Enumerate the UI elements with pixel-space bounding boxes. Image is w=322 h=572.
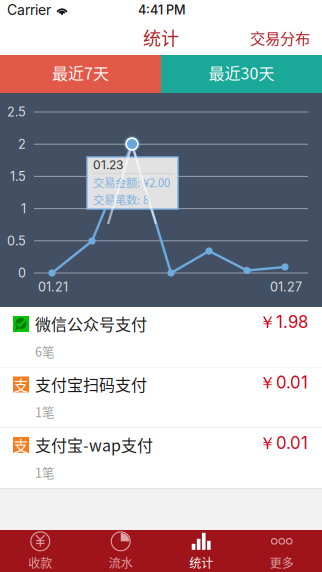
button[interactable]: 更多: [241, 530, 322, 572]
staticText: 收款: [28, 554, 52, 571]
staticText: 1笔: [35, 403, 55, 421]
staticText: Carrier: [7, 1, 51, 18]
staticText: 支付宝-wap支付: [35, 433, 153, 456]
button[interactable]: 支: [0, 367, 322, 427]
staticText: 1: [21, 201, 26, 216]
staticText: 微信公众号支付: [35, 312, 147, 335]
staticText: 支付宝扫码支付: [35, 372, 147, 396]
staticText: 最近30天: [208, 61, 274, 84]
staticText: 0: [18, 265, 26, 281]
staticText: 1笔: [35, 463, 55, 481]
staticText: 1.5: [10, 169, 26, 184]
button[interactable]: 微信公众号支付: [0, 307, 322, 367]
staticText: 01.23: [93, 158, 123, 172]
staticText: 最近7天: [52, 61, 109, 84]
staticText: 4:41 PM: [138, 2, 186, 18]
staticText: 交易笔数: 8: [93, 191, 149, 207]
staticText: 交易分布: [250, 26, 310, 49]
staticText: 支: [13, 374, 28, 395]
button[interactable]: 交易分布: [238, 20, 322, 54]
staticText: ￥0.01: [259, 372, 308, 394]
staticText: 2: [18, 136, 26, 152]
staticText: 6笔: [35, 342, 55, 360]
button[interactable]: 最近7天: [0, 55, 161, 93]
staticText: 支: [13, 434, 28, 456]
button[interactable]: 收款: [0, 530, 80, 572]
staticText: 更多: [270, 554, 294, 571]
staticText: 统计: [189, 554, 213, 571]
staticText: 0.5: [7, 233, 26, 248]
staticText: ￥1.98: [259, 312, 308, 333]
button[interactable]: 支: [0, 428, 322, 488]
staticText: 交易金额: ¥2.00: [93, 174, 170, 190]
staticText: ￥0.01: [259, 433, 308, 454]
staticText: 统计: [143, 24, 179, 51]
staticText: 01.21: [38, 279, 68, 295]
staticText: 2.5: [7, 104, 26, 120]
staticText: 流水: [109, 554, 133, 571]
button[interactable]: 最近30天: [161, 55, 322, 93]
staticText: 01.27: [270, 279, 302, 295]
button[interactable]: 流水: [80, 530, 161, 572]
button[interactable]: 统计: [161, 530, 241, 572]
